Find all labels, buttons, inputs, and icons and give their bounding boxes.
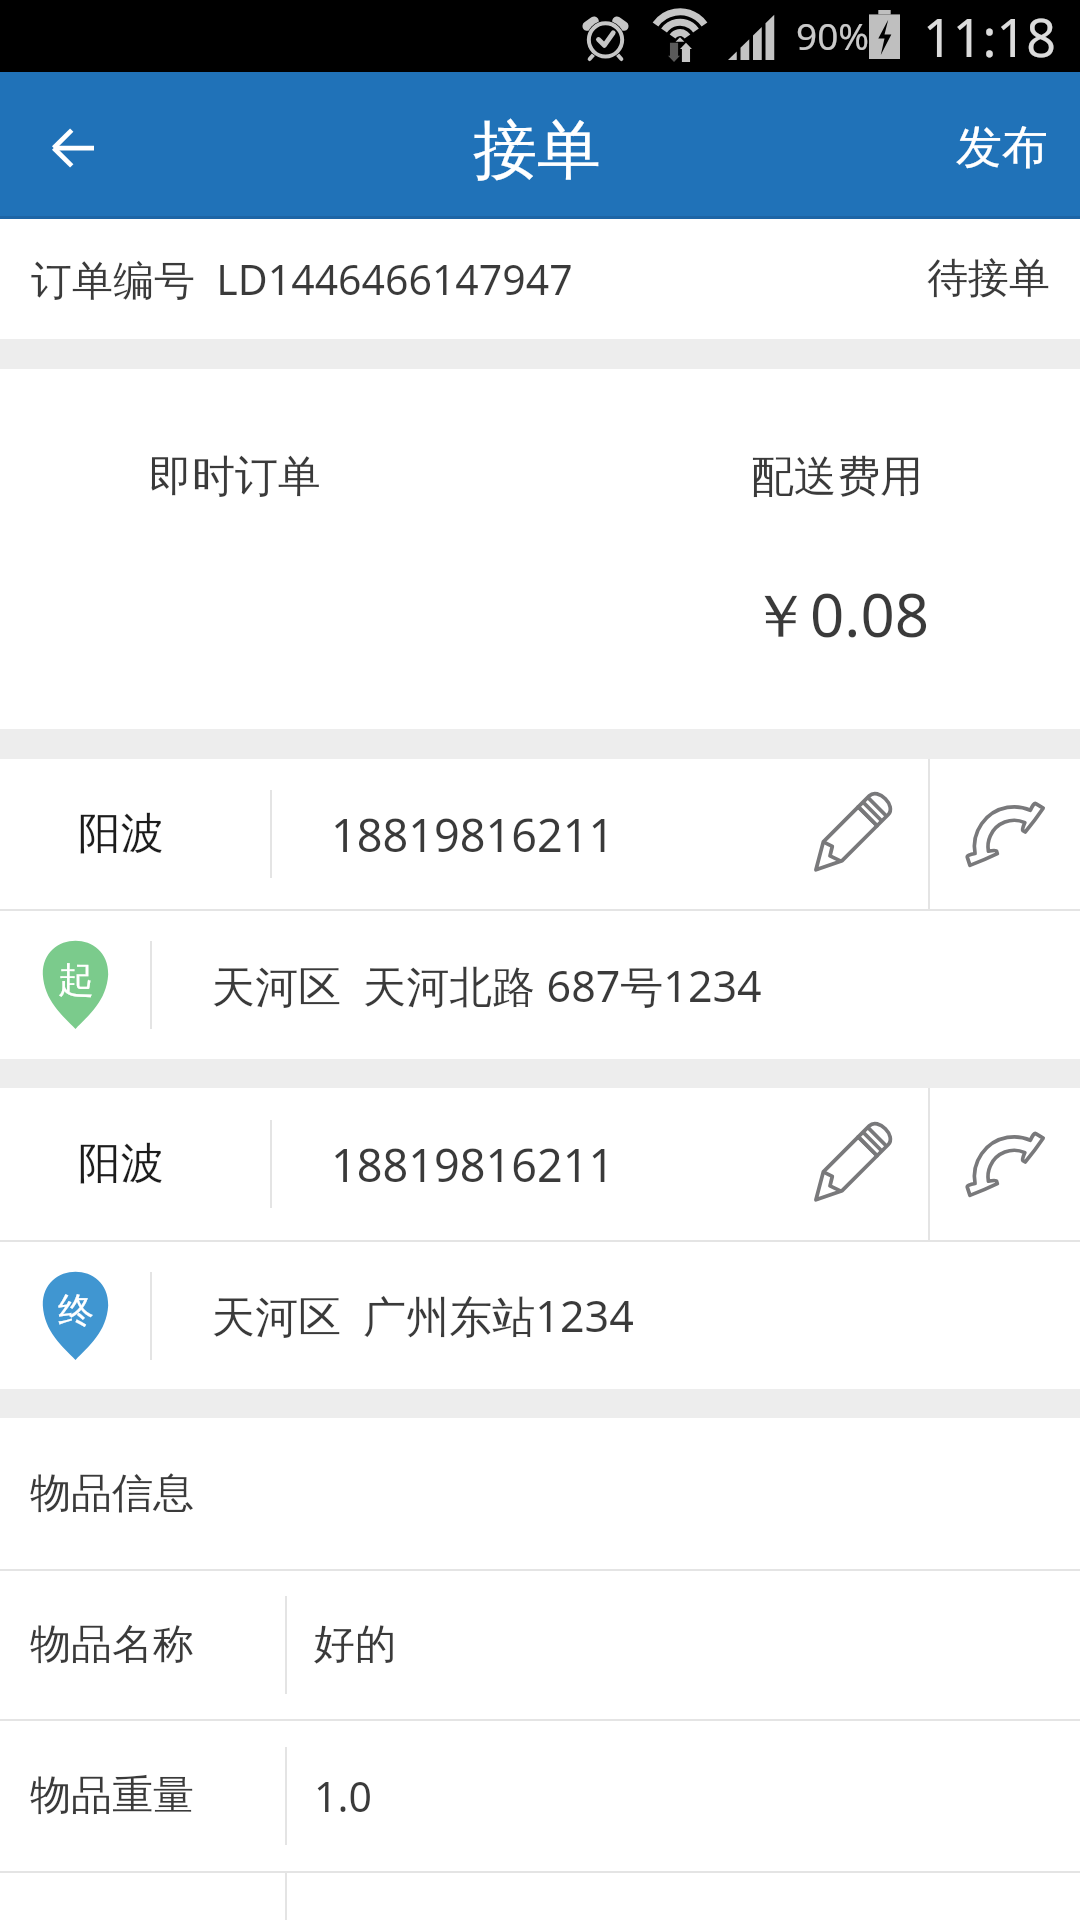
staticText: 阳波 (78, 1137, 164, 1191)
staticText: 18819816211 (331, 804, 615, 865)
button[interactable]: Edit (783, 1088, 916, 1240)
staticText: ￥0.08 (750, 573, 930, 655)
button[interactable]: Call (930, 1088, 1080, 1240)
button[interactable]: Back (0, 72, 146, 216)
button[interactable]: 发布 (916, 72, 1080, 216)
staticText: 物品名称 (30, 1619, 194, 1671)
staticText: 天河区 天河北路 687号1234 (212, 956, 762, 1015)
staticText: 发布 (956, 119, 1048, 177)
staticText: 订单编号 LD1446466147947 (31, 251, 573, 307)
button[interactable]: Edit (783, 759, 916, 909)
staticText: 物品信息 (30, 1468, 194, 1520)
staticText: 配送费用 (751, 450, 923, 504)
staticText: 物品重量 (30, 1770, 194, 1822)
staticText: 90% (796, 10, 870, 60)
staticText: 待接单 (927, 253, 1050, 305)
staticText: 天河区 广州东站1234 (212, 1286, 634, 1345)
staticText: 1.0 (314, 1768, 372, 1824)
staticText: 终 (58, 1288, 94, 1333)
staticText: 即时订单 (149, 450, 321, 504)
staticText: 好的 (314, 1619, 396, 1671)
staticText: 18819816211 (331, 1134, 615, 1195)
staticText: 阳波 (78, 807, 164, 861)
staticText: 接单 (473, 110, 601, 191)
staticText: 起 (58, 957, 94, 1002)
button[interactable]: Call (930, 759, 1080, 909)
staticText: 11:18 (923, 1, 1056, 72)
